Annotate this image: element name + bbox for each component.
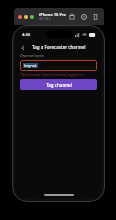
- staticText: This forecaster channel is already tagge…: [20, 73, 97, 77]
- button[interactable]: Rotate: [91, 12, 100, 21]
- staticText: 4:34: [22, 32, 30, 37]
- button[interactable]: Back: [18, 43, 27, 52]
- staticText: iOS 18.4: [39, 17, 51, 21]
- staticText: Channel name: [20, 53, 44, 58]
- button[interactable]: Tag channel: [20, 79, 97, 90]
- button[interactable]: Settings: [79, 12, 88, 21]
- button[interactable]: keynat: [20, 60, 97, 71]
- staticText: Tag channel: [46, 82, 72, 88]
- staticText: iPhone 16 Pro: [39, 12, 67, 17]
- staticText: keynat: [24, 63, 37, 68]
- staticText: Tag a Forecaster channel: [32, 44, 86, 50]
- button[interactable]: Home: [67, 12, 76, 21]
